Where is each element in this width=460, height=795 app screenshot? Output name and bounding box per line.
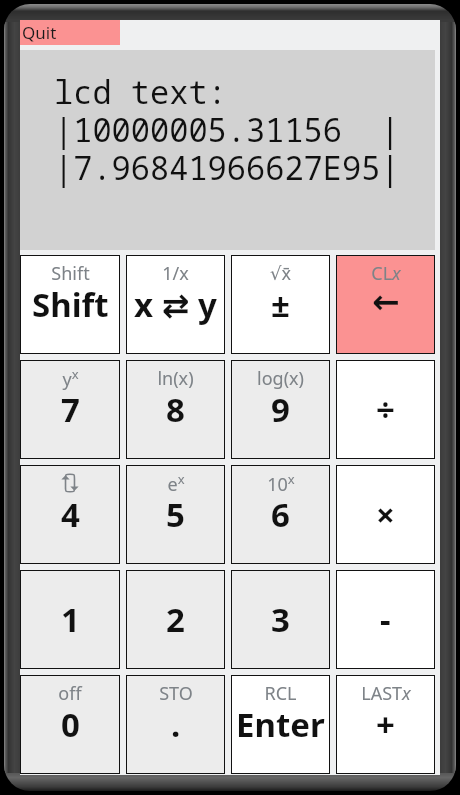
staticText: 8 xyxy=(166,387,185,432)
staticText: 0 xyxy=(61,702,80,747)
button[interactable]: RCL xyxy=(231,675,330,774)
staticText: 9 xyxy=(271,387,290,432)
staticText: 10x xyxy=(267,470,295,496)
button[interactable]: Subtract xyxy=(336,570,435,669)
staticText: 1 xyxy=(61,597,80,642)
staticText: ÷ xyxy=(376,387,395,432)
staticText: + xyxy=(376,702,395,747)
staticText: yx xyxy=(62,365,79,391)
staticText: |7.96841966627E95| xyxy=(54,146,400,190)
staticText: 2 xyxy=(166,597,185,642)
staticText: - xyxy=(380,597,391,642)
button[interactable]: Quit xyxy=(20,20,120,45)
staticText: . xyxy=(171,702,181,747)
staticText: ex xyxy=(167,470,185,496)
staticText: LASTx xyxy=(361,681,411,706)
staticText: RCL xyxy=(264,681,297,706)
staticText: Shift xyxy=(51,261,90,286)
staticText: 5 xyxy=(166,492,185,537)
staticText: CLx xyxy=(371,261,401,286)
staticText: 4 xyxy=(61,492,80,537)
staticText: off xyxy=(58,681,82,706)
button[interactable]: Multiply xyxy=(336,465,435,564)
staticText: × xyxy=(376,492,395,537)
button[interactable]: ex xyxy=(126,465,225,564)
button[interactable]: Clear X xyxy=(336,255,435,354)
button[interactable]: STO xyxy=(126,675,225,774)
button[interactable]: LASTx xyxy=(336,675,435,774)
staticText: STO xyxy=(159,681,193,706)
staticText: |10000005.31156 | xyxy=(54,108,400,152)
button[interactable]: 2 xyxy=(126,570,225,669)
staticText: ln(x) xyxy=(157,366,194,391)
button[interactable]: Divide xyxy=(336,360,435,459)
button[interactable]: 3 xyxy=(231,570,330,669)
button[interactable]: 1/x xyxy=(126,255,225,354)
button[interactable]: 1 xyxy=(20,570,120,669)
staticText: 6 xyxy=(271,492,290,537)
staticText: Shift xyxy=(32,282,109,327)
button[interactable]: Shift xyxy=(20,255,120,354)
button[interactable]: log(x) xyxy=(231,360,330,459)
staticText: 1/x xyxy=(162,261,189,286)
button[interactable]: ln(x) xyxy=(126,360,225,459)
staticText: log(x) xyxy=(257,366,304,391)
button[interactable]: 10x xyxy=(231,465,330,564)
staticText: ± xyxy=(271,282,290,327)
staticText: 3 xyxy=(271,597,290,642)
button[interactable]: 4 xyxy=(20,465,120,564)
staticText: lcd text: xyxy=(54,70,227,114)
staticText: ← xyxy=(372,282,400,320)
button[interactable]: √x̄ xyxy=(231,255,330,354)
staticText: x ⇄ y xyxy=(134,282,217,327)
button[interactable]: yx xyxy=(20,360,120,459)
staticText: Enter xyxy=(236,702,325,747)
staticText: 7 xyxy=(61,387,80,432)
staticText: √x̄ xyxy=(270,261,291,286)
staticText: Quit xyxy=(22,21,57,44)
button[interactable]: off xyxy=(20,675,120,774)
